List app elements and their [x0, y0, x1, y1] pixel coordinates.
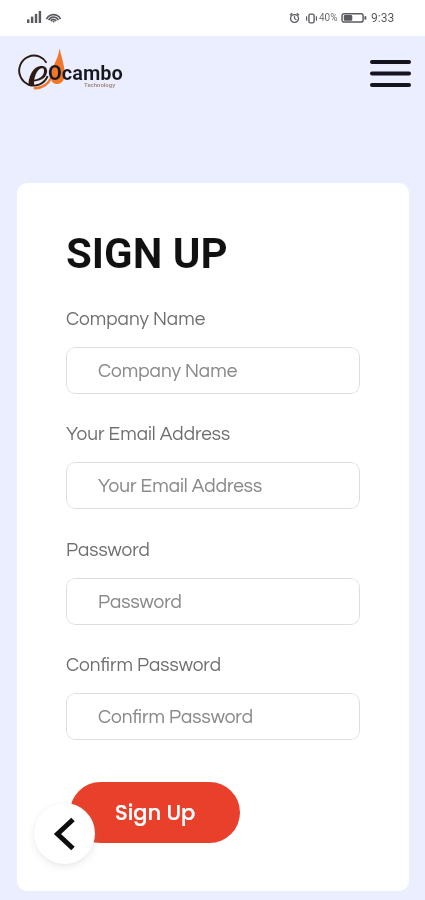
button[interactable]: Confirm Password	[66, 693, 360, 740]
staticText: Company Name	[66, 309, 206, 329]
staticText: Password	[98, 592, 182, 612]
staticText: e	[28, 40, 49, 86]
button[interactable]: Password	[66, 578, 360, 625]
button[interactable]: Your Email Address	[66, 462, 360, 509]
staticText: Technology	[84, 81, 116, 88]
staticText: Confirm Password	[98, 707, 253, 727]
button[interactable]: Sign Up	[70, 782, 240, 843]
staticText: Password	[66, 540, 150, 560]
staticText: Company Name	[98, 361, 238, 381]
staticText: Your Email Address	[98, 476, 263, 496]
button[interactable]: Company Name	[66, 347, 360, 394]
button[interactable]: Back	[34, 803, 95, 864]
staticText: Sign Up	[115, 798, 196, 827]
staticText: Ocambo	[48, 61, 123, 84]
staticText: 40%	[319, 12, 338, 24]
staticText: Your Email Address	[66, 424, 231, 444]
staticText: 9:33	[371, 11, 395, 25]
button[interactable]: Open navigation menu	[366, 47, 415, 99]
staticText: SIGN UP	[66, 229, 228, 278]
staticText: Confirm Password	[66, 655, 221, 675]
